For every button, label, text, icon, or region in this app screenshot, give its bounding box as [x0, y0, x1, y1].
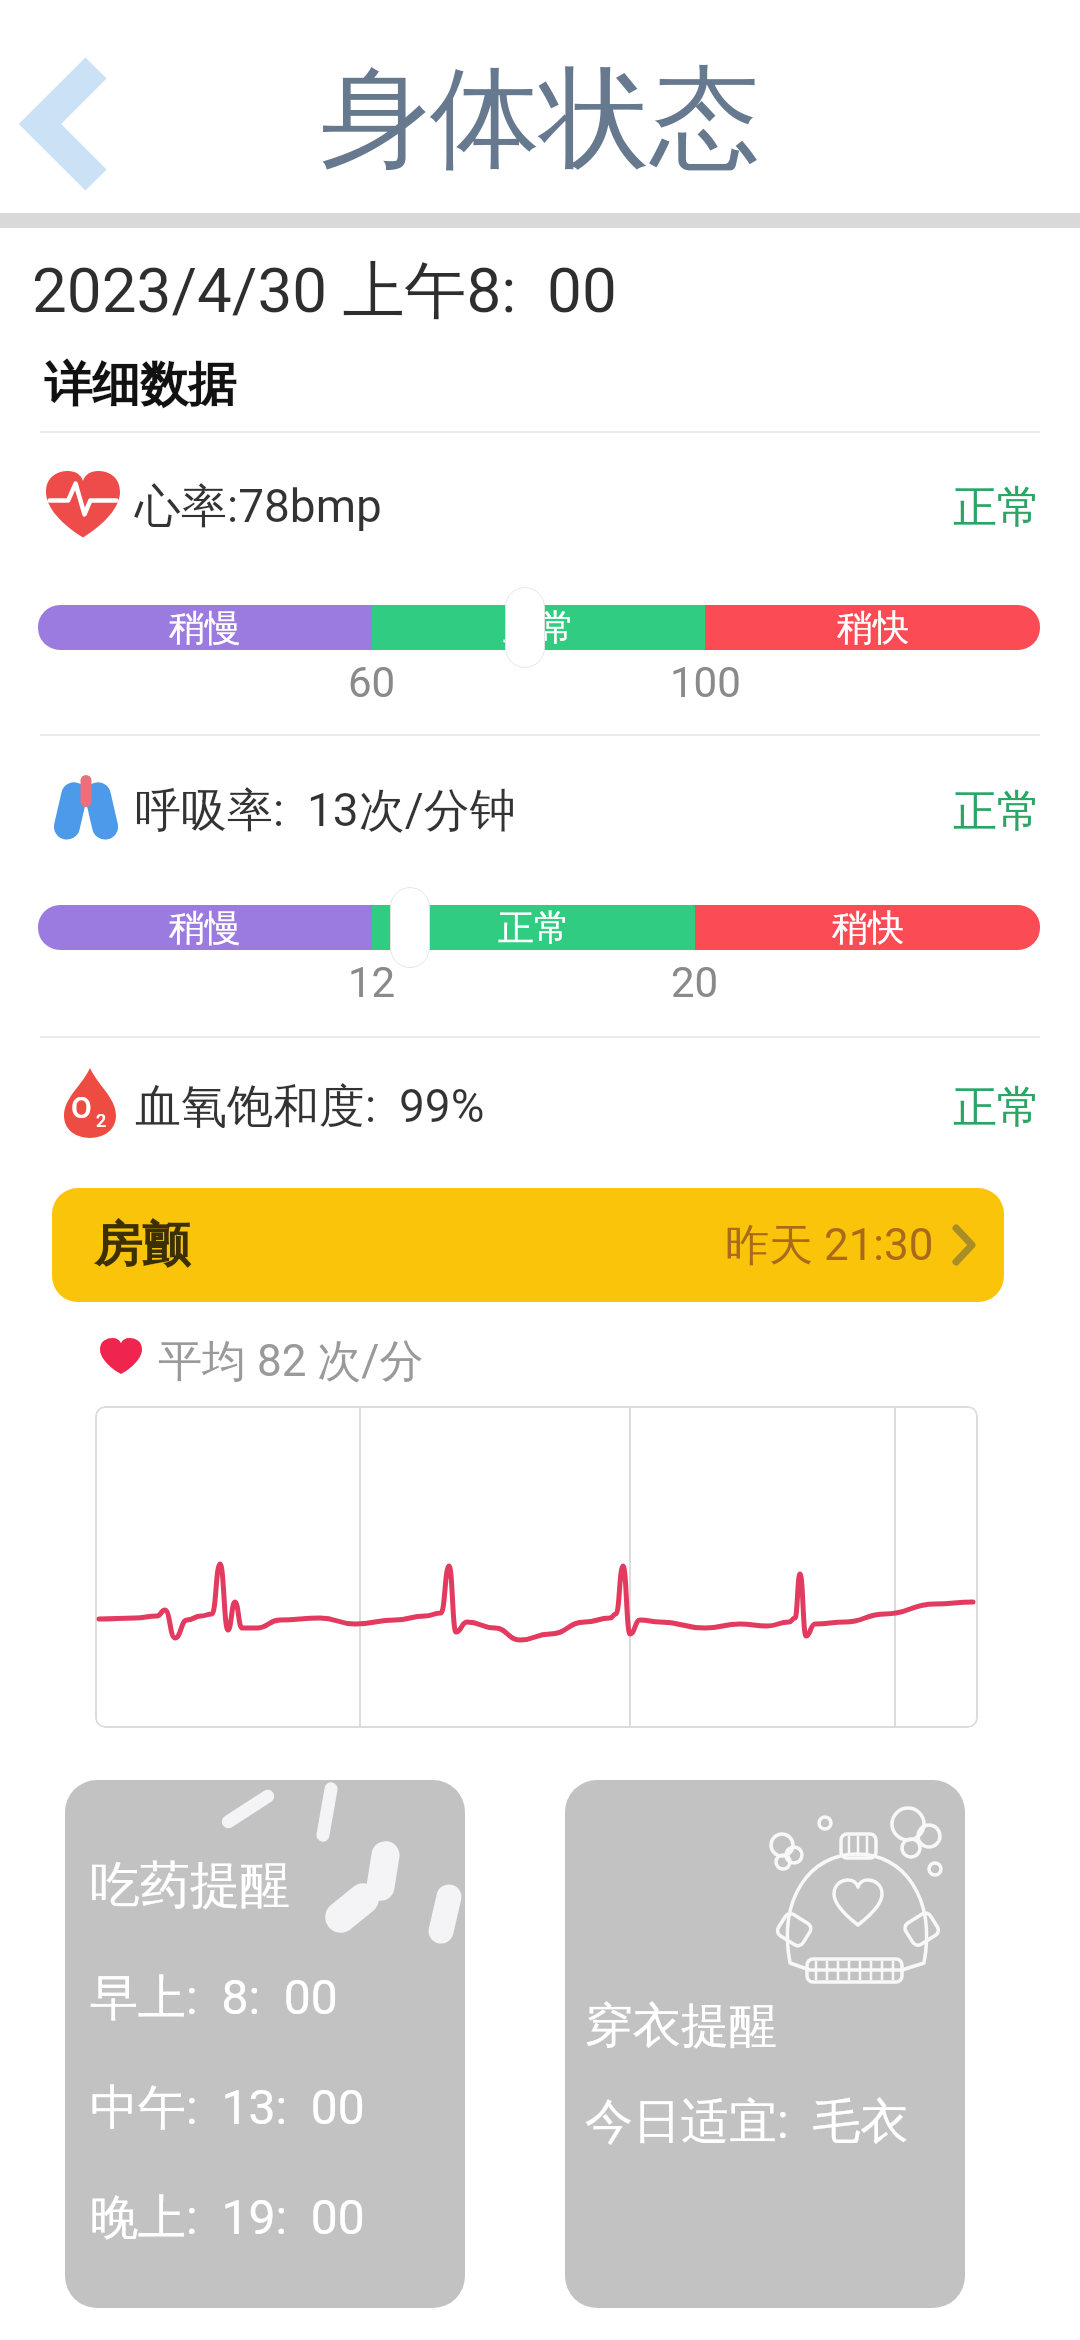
staticText: 稍快 [837, 605, 909, 650]
staticText: 心率:78bmp [135, 478, 382, 536]
staticText: 稍慢 [169, 905, 241, 950]
staticText: 昨天 21:30 [725, 1218, 934, 1273]
staticText: 吃药提醒 [90, 1854, 290, 1917]
staticText: 穿衣提醒 [585, 1996, 777, 2056]
staticText: 2 [96, 1110, 107, 1131]
button[interactable] [34, 68, 96, 180]
button[interactable]: 房颤 [52, 1188, 1004, 1302]
staticText: 12 [348, 958, 396, 1007]
staticText: 60 [348, 658, 396, 707]
button[interactable] [65, 1780, 465, 2308]
staticText: O [71, 1090, 92, 1125]
staticText: 晚上: 19: 00 [90, 2188, 365, 2248]
staticText: 稍快 [832, 905, 904, 950]
staticText: 20 [671, 958, 719, 1007]
staticText: 今日适宜: 毛衣 [585, 2092, 909, 2152]
staticText: 呼吸率: 13次/分钟 [135, 782, 516, 840]
staticText: 正常 [498, 905, 570, 950]
staticText: 血氧饱和度: 99% [135, 1078, 485, 1136]
staticText: 平均 82 次/分 [158, 1334, 424, 1389]
staticText: 中午: 13: 00 [90, 2078, 365, 2138]
staticText: 房颤 [94, 1215, 190, 1275]
staticText: 正常 [953, 784, 1041, 839]
staticText: 正常 [953, 480, 1041, 535]
staticText: 正常 [953, 1080, 1041, 1135]
staticText: 详细数据 [44, 355, 236, 415]
staticText: 100 [670, 658, 741, 707]
staticText: 早上: 8: 00 [90, 1968, 338, 2028]
staticText: 2023/4/30 上午8: 00 [32, 252, 617, 330]
staticText: 稍慢 [169, 605, 241, 650]
staticText: 正常 [503, 605, 575, 650]
button[interactable] [565, 1780, 965, 2308]
staticText: 身体状态 [320, 50, 760, 189]
